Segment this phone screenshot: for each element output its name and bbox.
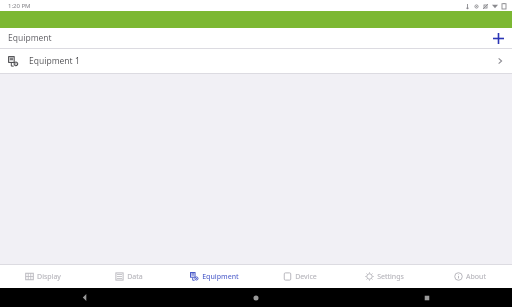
staticText: Equipment 1: [29, 55, 80, 67]
staticText: Settings: [377, 272, 404, 282]
staticText: Display: [37, 272, 61, 282]
staticText: 1:20 PM: [8, 2, 31, 10]
button[interactable]: Back: [0, 288, 170, 307]
staticText: Data: [127, 272, 143, 282]
staticText: About: [466, 272, 486, 282]
staticText: Equipment: [8, 32, 52, 44]
button[interactable]: Home: [170, 288, 341, 307]
button[interactable]: Data: [86, 265, 172, 288]
staticText: Device: [295, 272, 317, 282]
button[interactable]: Equipment: [0, 28, 512, 48]
button[interactable]: Recent apps: [341, 288, 512, 307]
button[interactable]: Equipment: [172, 265, 257, 288]
button[interactable]: Display: [0, 265, 86, 288]
button[interactable]: Equipment 1: [0, 49, 512, 73]
button[interactable]: Add equipment: [490, 30, 506, 46]
button[interactable]: Settings: [342, 265, 427, 288]
staticText: Equipment: [202, 272, 239, 282]
button[interactable]: About: [427, 265, 512, 288]
button[interactable]: Device: [257, 265, 342, 288]
